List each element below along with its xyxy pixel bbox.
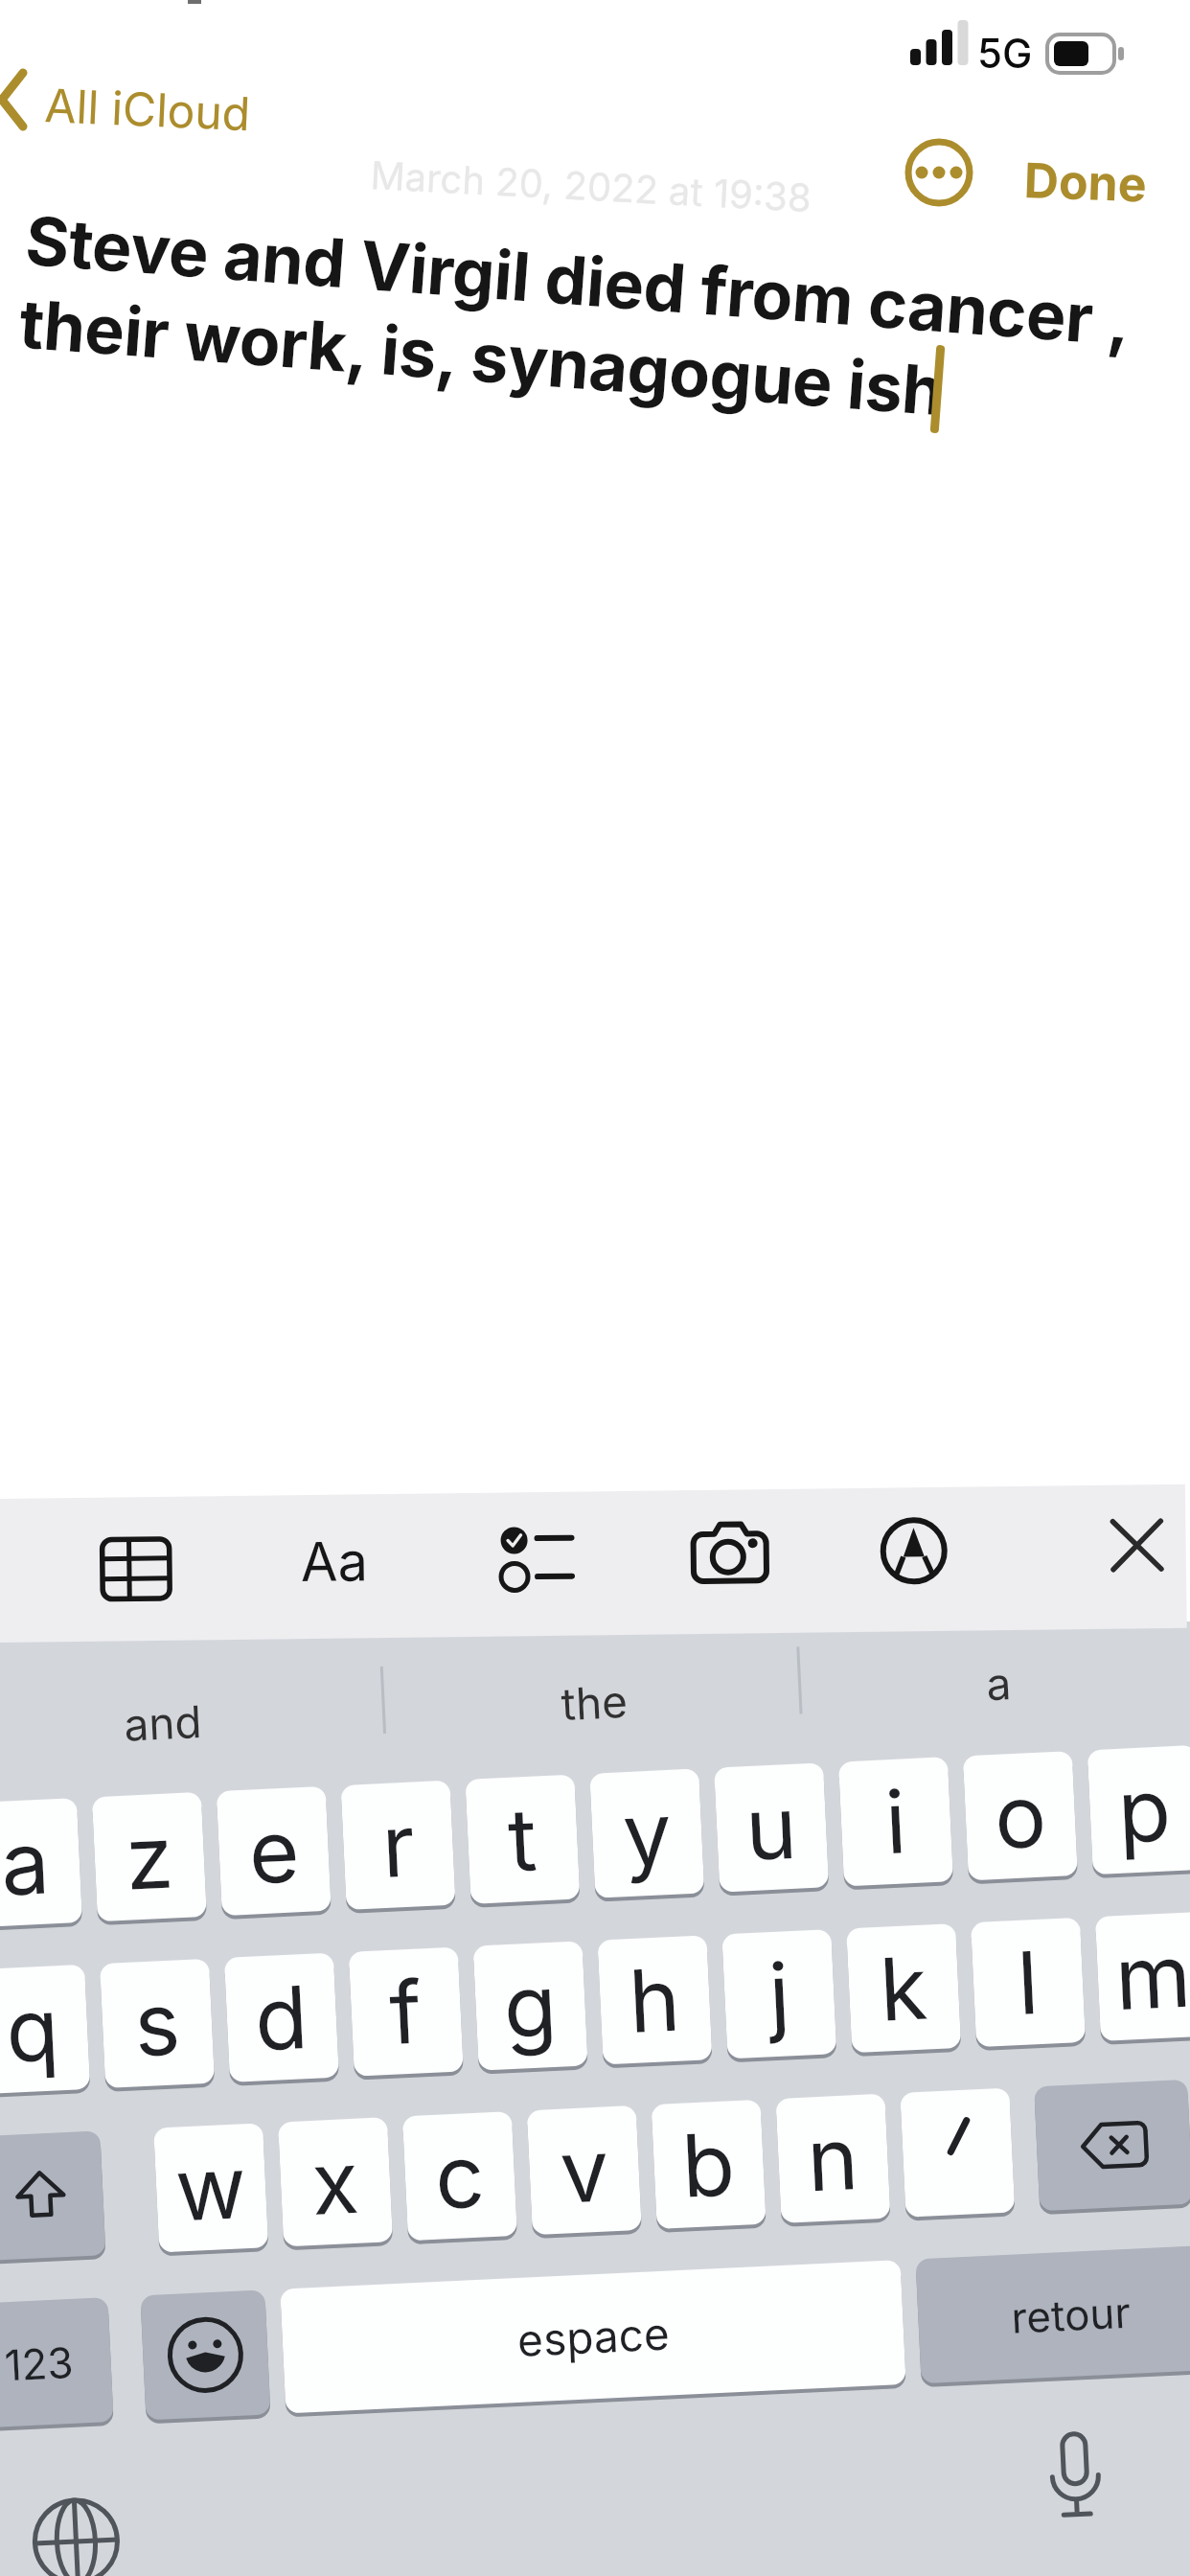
staticText: w <box>173 2134 249 2242</box>
button[interactable]: c <box>402 2111 517 2241</box>
staticText: espace <box>516 2306 671 2367</box>
staticText: n <box>805 2106 861 2212</box>
button[interactable]: z <box>92 1792 207 1922</box>
staticText: f <box>387 1959 425 2065</box>
staticText: retour <box>1010 2286 1132 2343</box>
button[interactable]: w <box>153 2123 268 2253</box>
button[interactable] <box>879 1516 949 1586</box>
staticText: q <box>4 1976 62 2083</box>
button[interactable]: and <box>123 1694 204 1751</box>
button[interactable]: a <box>0 1798 82 1927</box>
button[interactable]: Done <box>1023 151 1148 213</box>
staticText: k <box>877 1935 930 2042</box>
staticText: March 20, 2022 at 19:38 <box>369 151 813 221</box>
button[interactable] <box>904 138 973 207</box>
button[interactable]: h <box>597 1935 712 2065</box>
staticText: x <box>309 2129 362 2236</box>
button[interactable]: g <box>473 1941 588 2071</box>
staticText: j <box>766 1942 792 2047</box>
button[interactable]: the <box>560 1674 630 1731</box>
button[interactable]: espace <box>280 2260 906 2414</box>
staticText: v <box>558 2117 612 2224</box>
button[interactable]: i <box>838 1757 953 1886</box>
button[interactable]: m <box>1095 1912 1190 2041</box>
button[interactable]: q <box>0 1964 90 2094</box>
button[interactable]: retour <box>915 2245 1190 2384</box>
button[interactable] <box>0 2131 106 2261</box>
staticText: t <box>506 1787 539 1893</box>
staticText: 5G <box>977 29 1033 78</box>
staticText: p <box>1115 1757 1174 1864</box>
staticText: s <box>132 1971 183 2077</box>
staticText: m <box>1113 1923 1190 2031</box>
button[interactable]: j <box>722 1929 837 2059</box>
staticText: a <box>0 1810 52 1916</box>
staticText: h <box>627 1947 683 2054</box>
button[interactable] <box>140 2290 271 2420</box>
staticText: g <box>501 1953 560 2060</box>
button[interactable]: e <box>216 1786 331 1916</box>
staticText: y <box>621 1780 674 1887</box>
button[interactable] <box>691 1520 772 1590</box>
button[interactable]: b <box>651 2100 766 2229</box>
button[interactable] <box>499 1526 586 1604</box>
staticText: Steve and Virgil died from cancer , thei… <box>17 199 1133 445</box>
button[interactable]: r <box>341 1780 456 1910</box>
button[interactable] <box>1046 2431 1105 2533</box>
button[interactable] <box>900 2088 1015 2217</box>
staticText: o <box>992 1763 1049 1870</box>
staticText: d <box>252 1965 311 2071</box>
button[interactable]: a <box>985 1656 1012 1711</box>
staticText: r <box>379 1793 417 1899</box>
button[interactable] <box>1034 2079 1190 2211</box>
staticText: i <box>883 1769 909 1875</box>
button[interactable]: k <box>846 1923 961 2053</box>
button[interactable]: p <box>1087 1745 1190 1875</box>
button[interactable] <box>29 2494 123 2576</box>
staticText: 123 <box>3 2336 75 2390</box>
button[interactable]: t <box>465 1774 580 1904</box>
staticText: l <box>1015 1930 1041 2035</box>
staticText: c <box>433 2123 487 2230</box>
button[interactable]: u <box>714 1763 829 1892</box>
button[interactable]: f <box>349 1947 464 2076</box>
staticText: u <box>743 1775 800 1881</box>
button[interactable] <box>1109 1517 1165 1573</box>
staticText: e <box>246 1798 302 1905</box>
button[interactable] <box>99 1534 173 1604</box>
button[interactable]: x <box>278 2117 393 2247</box>
staticText: Done <box>1023 151 1148 213</box>
button[interactable]: n <box>776 2094 891 2223</box>
button[interactable]: l <box>971 1918 1086 2047</box>
button[interactable]: d <box>224 1953 339 2082</box>
staticText: z <box>123 1804 176 1911</box>
button[interactable]: 123 <box>0 2297 114 2428</box>
staticText: b <box>679 2111 738 2218</box>
button[interactable]: s <box>100 1959 215 2088</box>
button[interactable]: o <box>963 1751 1078 1881</box>
button[interactable]: y <box>590 1769 705 1898</box>
button[interactable]: v <box>527 2105 642 2235</box>
staticText: All iCloud <box>44 77 252 141</box>
button[interactable]: All iCloud <box>44 77 252 141</box>
button[interactable]: Aa <box>300 1529 369 1595</box>
